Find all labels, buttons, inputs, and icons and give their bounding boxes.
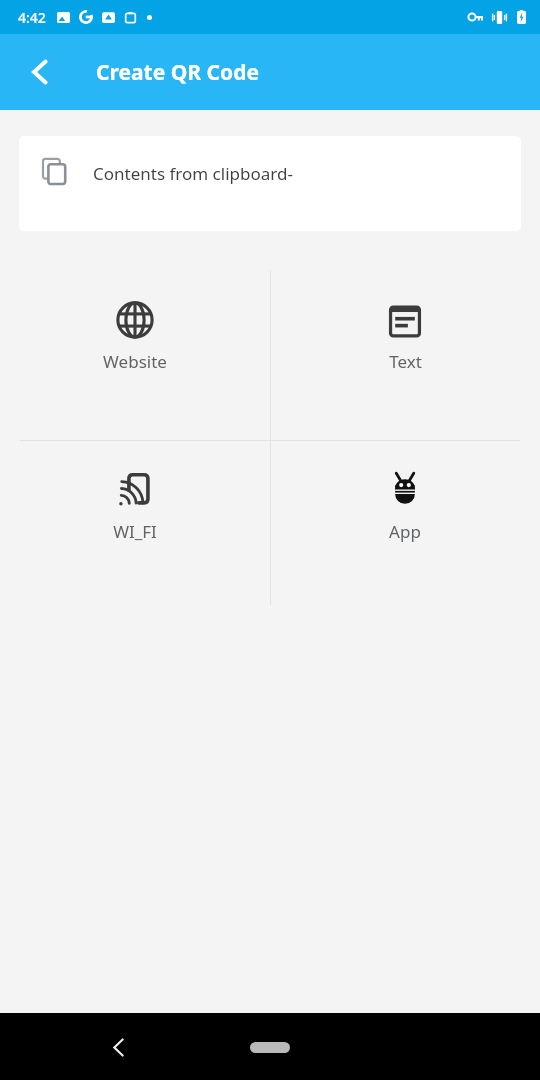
button[interactable]: App [270, 433, 540, 603]
staticText: Create QR Code [96, 58, 259, 87]
button[interactable]: Back [14, 46, 66, 98]
button[interactable]: Contents from clipboard- [19, 136, 521, 231]
button[interactable]: Website [0, 263, 270, 433]
staticText: Website [103, 350, 167, 373]
button[interactable]: Back [92, 1021, 144, 1073]
button[interactable]: Text [270, 263, 540, 433]
staticText: 4:42 [18, 8, 46, 27]
staticText: App [389, 520, 421, 543]
staticText: Text [389, 350, 422, 373]
staticText: WI_FI [113, 520, 157, 543]
staticText: Contents from clipboard- [93, 162, 293, 185]
button[interactable]: WI_FI [0, 433, 270, 603]
button[interactable]: Home [250, 1042, 290, 1053]
